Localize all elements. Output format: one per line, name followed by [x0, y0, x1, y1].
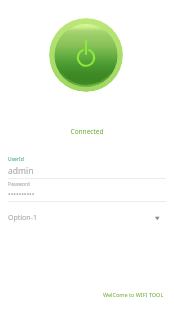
- staticText: Option-1: [8, 213, 153, 223]
- button[interactable]: Option-1: [8, 213, 166, 223]
- button[interactable]: Power toggle: [49, 18, 123, 92]
- staticText: Connected: [0, 127, 174, 136]
- staticText: UserId: [8, 156, 24, 163]
- staticText: ••••••••••: [8, 190, 35, 200]
- staticText: WelCome to WIFI TOOL: [103, 291, 164, 298]
- staticText: admin: [8, 165, 34, 177]
- staticText: Password: [8, 181, 30, 188]
